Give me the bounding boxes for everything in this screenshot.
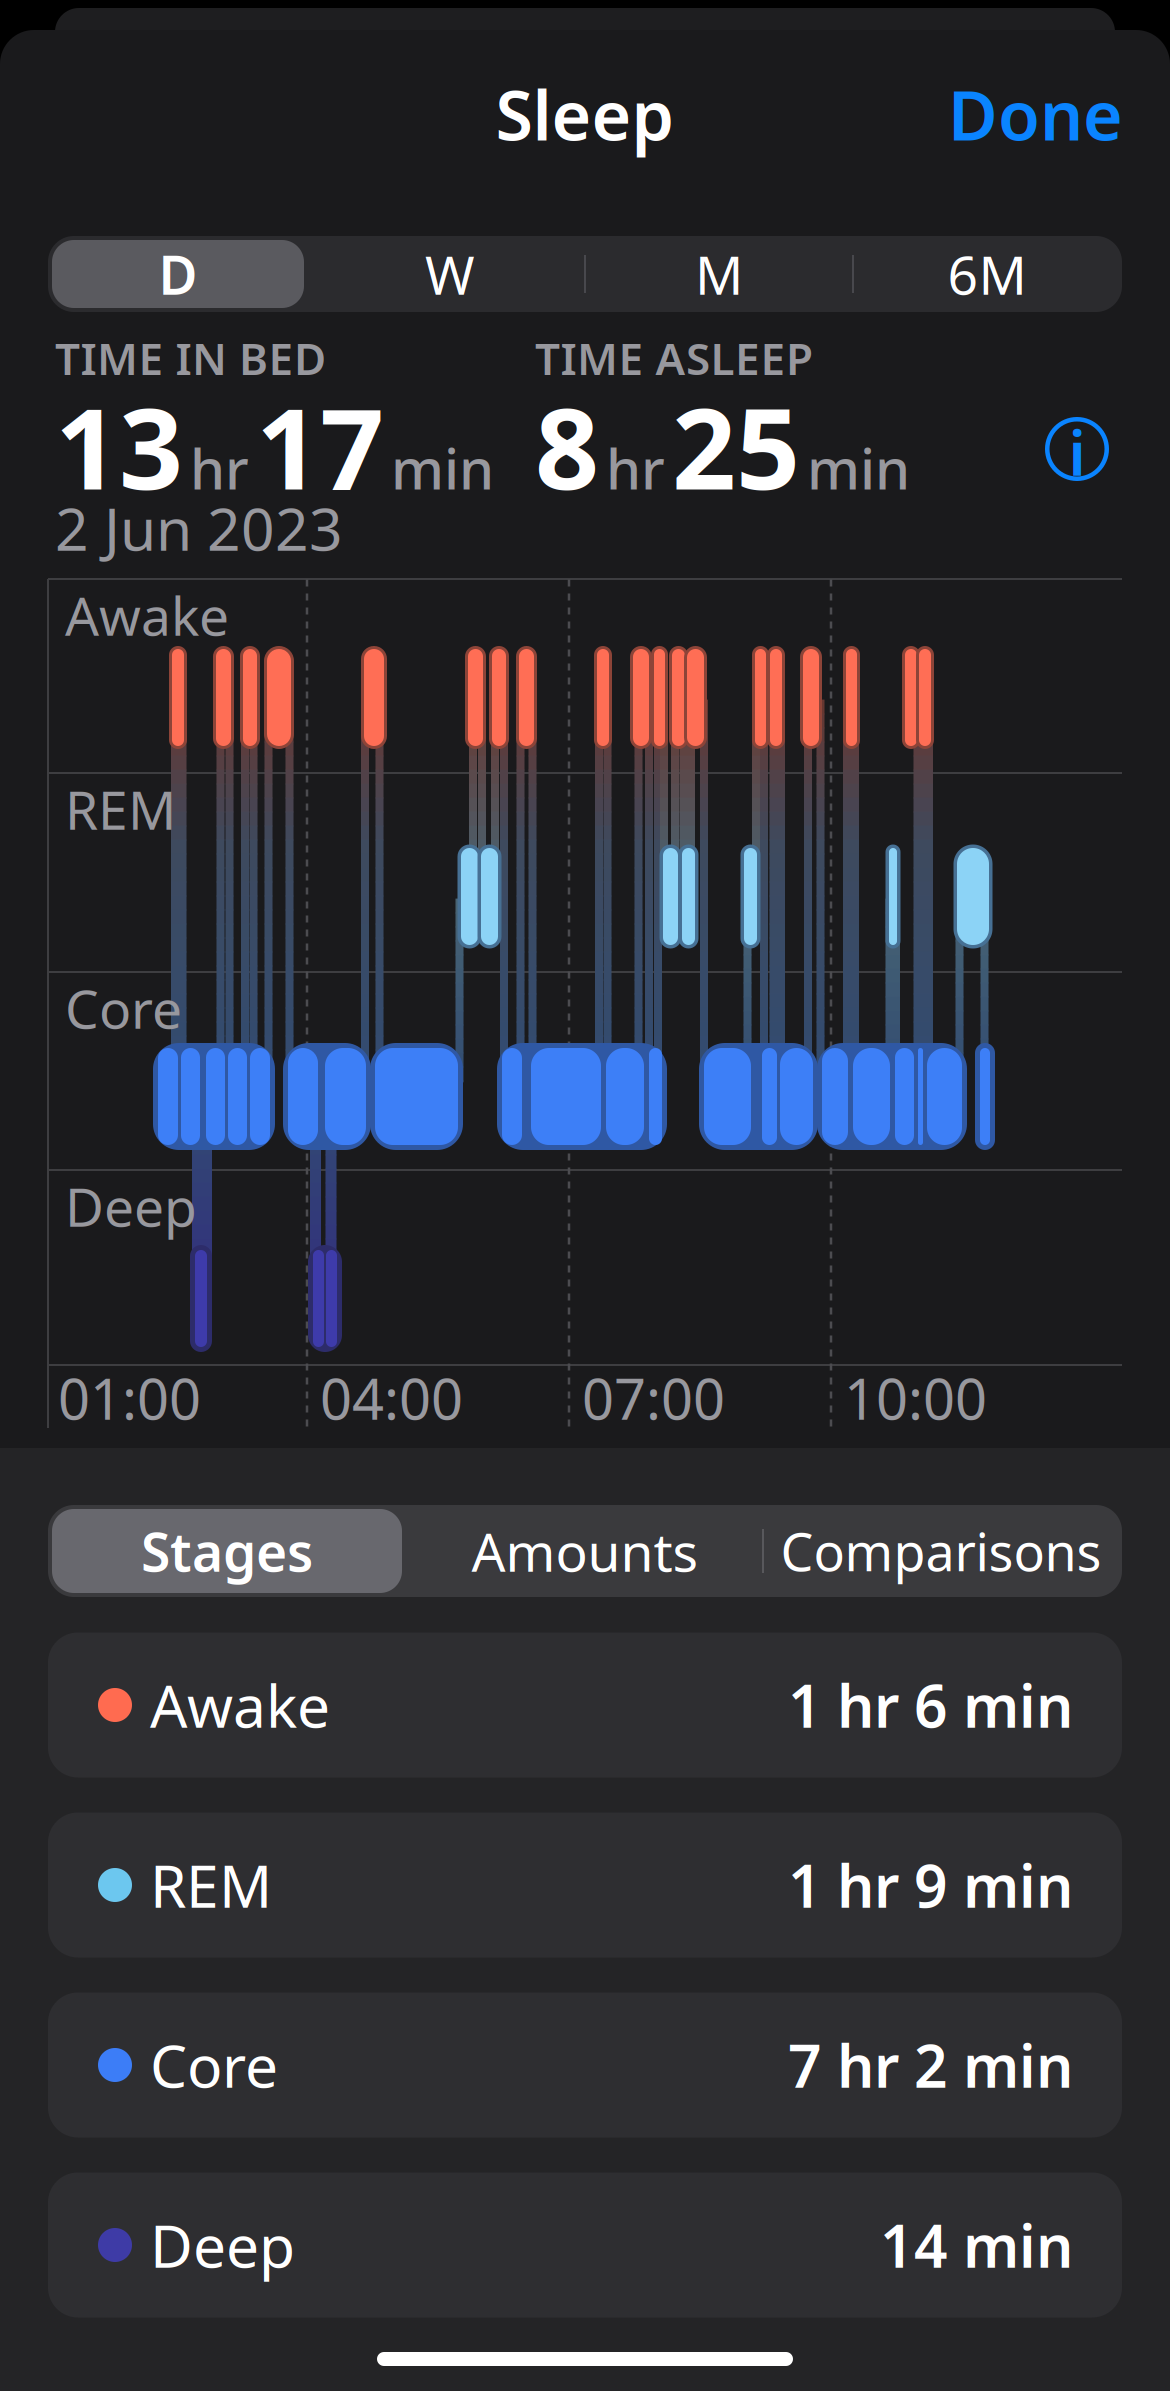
staticText: 07:00 [582,1361,725,1435]
staticText: W [425,239,475,309]
staticText: 25 [672,372,800,520]
staticText: 1 hr 9 min [788,1846,1073,1924]
staticText: hr [190,430,249,505]
staticText: Comparisons [780,1516,1101,1586]
staticText: Core [65,973,182,1043]
staticText: Core [150,2026,278,2104]
staticText: 17 [256,372,384,520]
staticText: 7 hr 2 min [788,2026,1073,2104]
staticText: TIME IN BED [55,329,326,387]
staticText: 2 Jun 2023 [55,489,343,567]
staticText: 6M [947,239,1026,309]
staticText: Deep [150,2206,295,2284]
staticText: REM [150,1846,272,1924]
staticText: Amounts [471,1516,698,1586]
staticText: 13 [55,372,183,520]
staticText: Stages [141,1516,313,1586]
staticText: hr [606,430,665,505]
staticText: D [158,239,197,309]
staticText: 04:00 [320,1361,463,1435]
staticText: 14 min [880,2206,1073,2284]
staticText: REM [65,774,176,844]
staticText: Awake [65,580,229,650]
staticText: i [1068,411,1085,493]
staticText: 1 hr 6 min [788,1666,1073,1744]
staticText: M [695,239,743,309]
staticText: 10:00 [844,1361,987,1435]
staticText: Awake [150,1666,330,1744]
staticText: min [391,430,494,505]
staticText: TIME ASLEEP [535,329,813,387]
staticText: Sleep [495,69,674,159]
staticText: Deep [65,1171,197,1241]
staticText: Done [948,69,1123,159]
staticText: 01:00 [58,1361,201,1435]
staticText: min [807,430,910,505]
staticText: 8 [535,372,599,520]
